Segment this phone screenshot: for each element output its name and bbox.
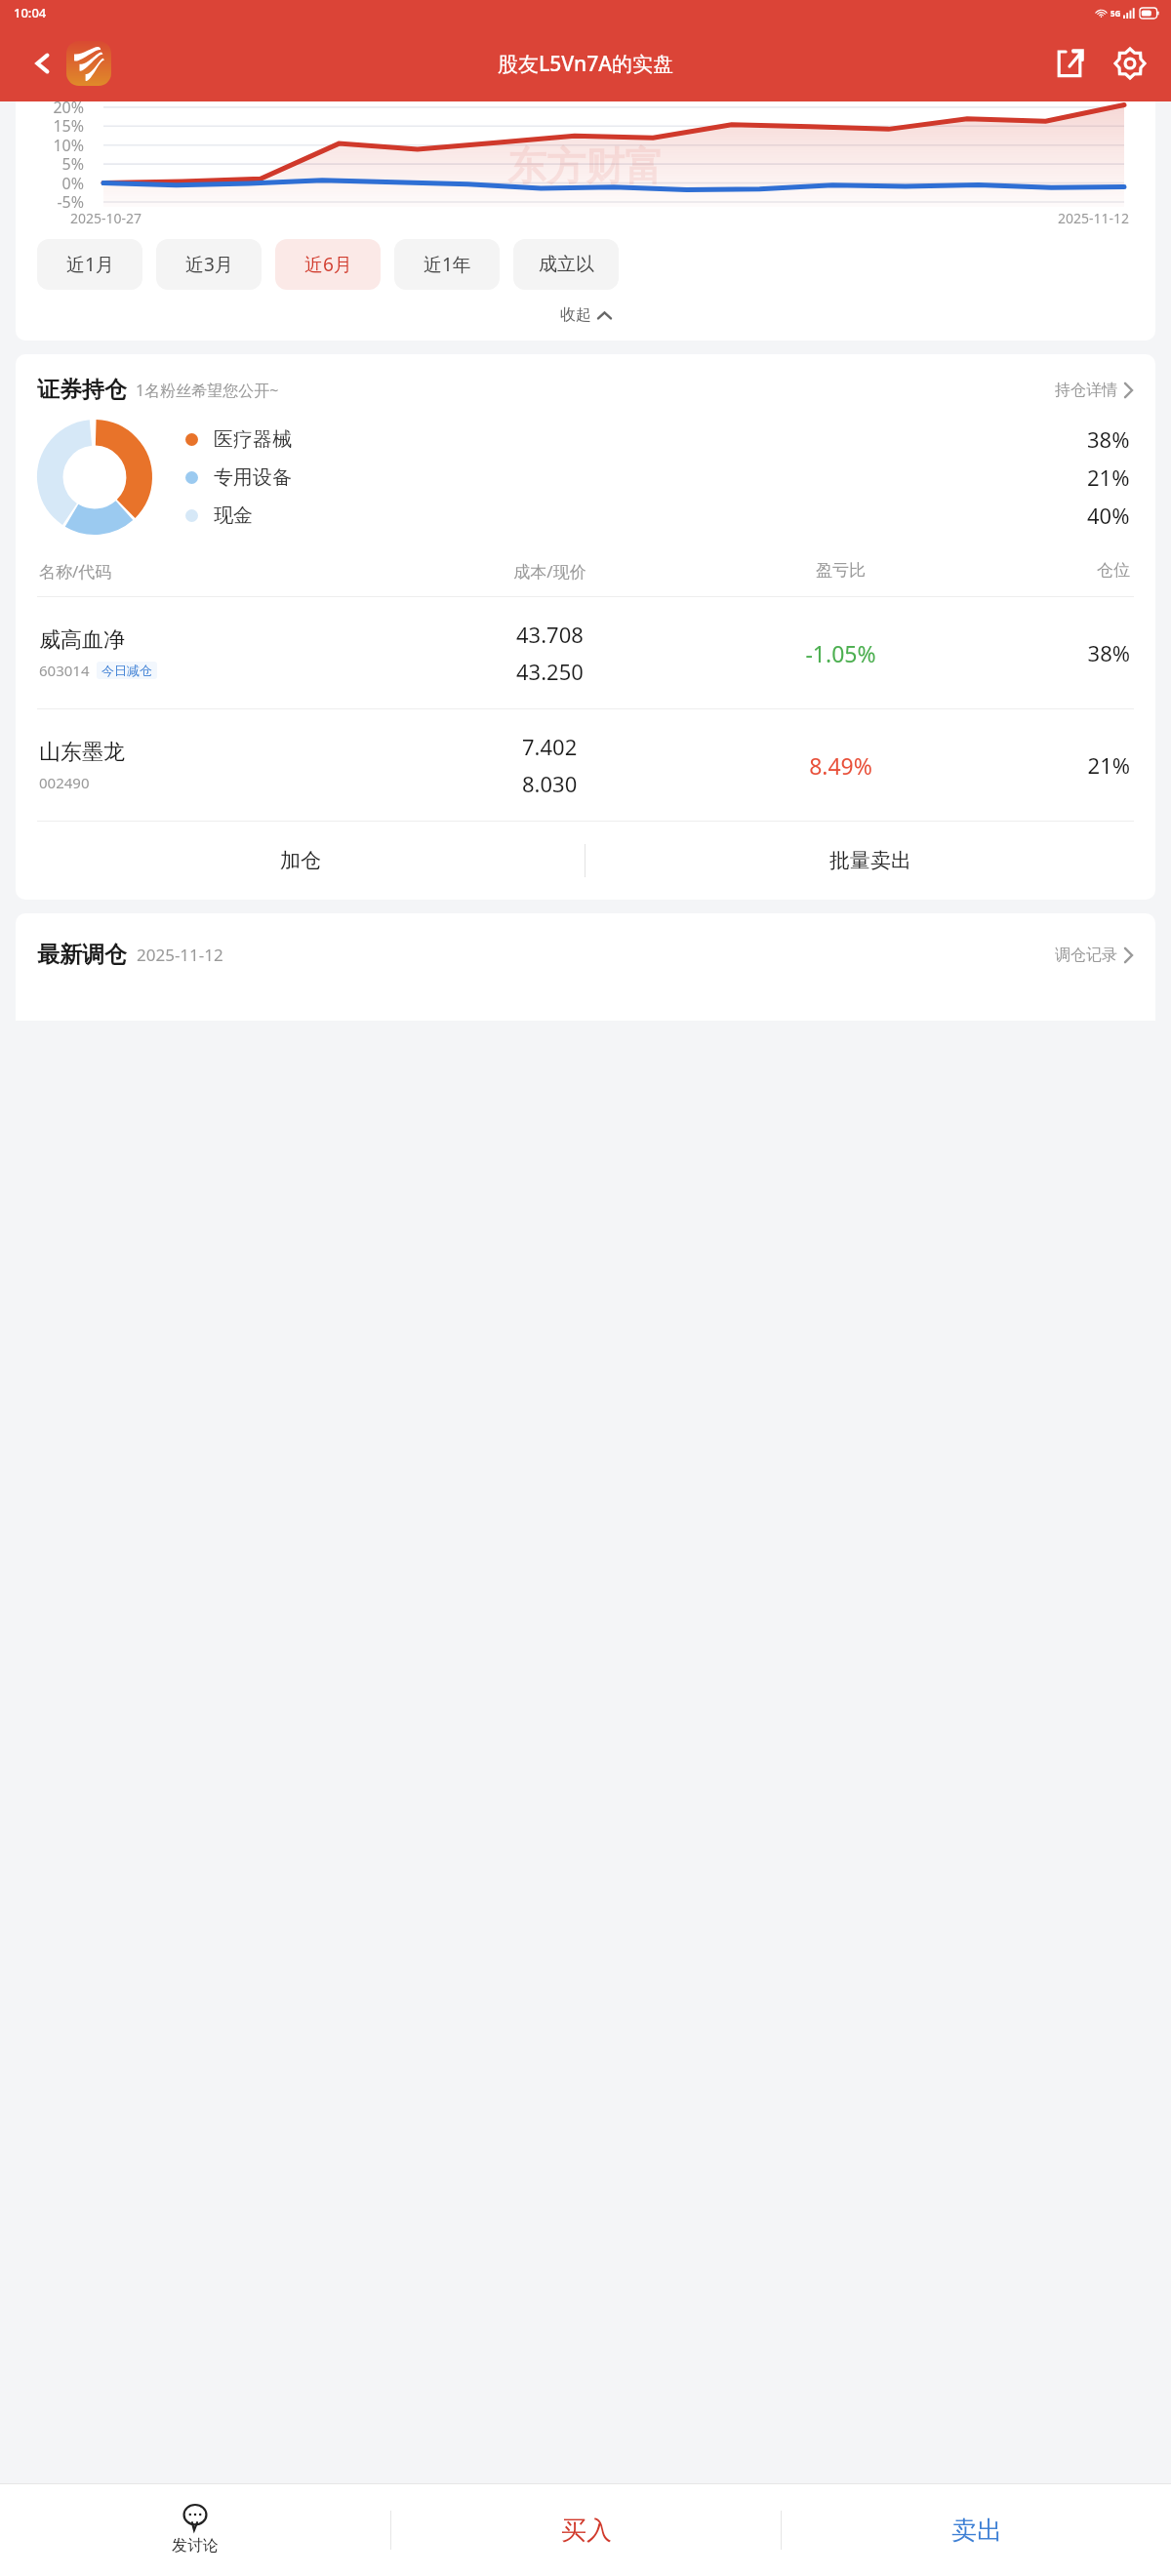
staticText: 43.250 [516, 657, 584, 686]
button[interactable]: 批量卖出 [585, 822, 1155, 900]
staticText: 买入 [561, 2515, 612, 2547]
staticText: 山东墨龙 [39, 739, 125, 766]
staticText: 0% [16, 173, 84, 194]
staticText: 15% [16, 115, 84, 137]
button[interactable]: 成立以 [513, 239, 619, 290]
button[interactable]: 近1月 [37, 239, 142, 290]
staticText: 7.402 [522, 732, 578, 761]
staticText: 名称/代码 [39, 560, 388, 583]
button[interactable]: 近6月 [275, 239, 381, 290]
staticText: 21% [1087, 463, 1130, 492]
staticText: 持仓详情 [1055, 381, 1117, 400]
button[interactable]: 买入 [391, 2484, 781, 2576]
staticText: 近6月 [304, 252, 352, 277]
staticText: 仓位 [970, 560, 1130, 581]
staticText: 调仓记录 [1055, 946, 1117, 965]
staticText: 近1月 [66, 252, 114, 277]
staticText: 卖出 [951, 2515, 1002, 2547]
staticText: 威高血净 [39, 626, 125, 654]
staticText: 证券持仓 [37, 376, 127, 404]
staticText: 38% [970, 638, 1130, 667]
button[interactable]: 近3月 [156, 239, 262, 290]
button[interactable]: 山东墨龙 [16, 709, 1155, 821]
button[interactable]: 持仓详情 [1055, 381, 1134, 400]
button[interactable]: 卖出 [782, 2484, 1171, 2576]
staticText: 1名粉丝希望您公开~ [136, 380, 279, 401]
staticText: 盈亏比 [711, 560, 970, 581]
staticText: 最新调仓 [37, 941, 127, 969]
staticText: 20% [16, 101, 84, 118]
staticText: 成本/现价 [388, 560, 711, 583]
staticText: 加仓 [280, 848, 321, 873]
staticText: 2025-10-27 [70, 209, 142, 227]
staticText: 2025-11-12 [1058, 209, 1130, 227]
staticText: 收起 [560, 305, 591, 325]
staticText: 现金 [214, 503, 253, 528]
button[interactable]: Share [1046, 40, 1093, 87]
staticText: 5G [1110, 8, 1121, 19]
staticText: 批量卖出 [829, 848, 911, 873]
staticText: 603014 [39, 661, 90, 680]
button[interactable]: 调仓记录 [1055, 946, 1134, 965]
staticText: 成立以 [539, 253, 594, 276]
button[interactable]: 收起 [16, 302, 1155, 329]
button[interactable]: 近1年 [394, 239, 500, 290]
button[interactable]: Settings [1107, 40, 1153, 87]
staticText: 40% [1087, 501, 1130, 530]
staticText: 专用设备 [214, 465, 292, 490]
staticText: 今日减仓 [101, 663, 152, 678]
staticText: 5% [16, 153, 84, 175]
button[interactable]: 威高血净 [16, 597, 1155, 708]
staticText: 21% [970, 750, 1130, 780]
staticText: -5% [16, 191, 84, 213]
staticText: 股友L5Vn7A的实盘 [498, 50, 673, 78]
button[interactable]: Back [21, 42, 64, 85]
staticText: 8.49% [711, 750, 970, 781]
staticText: 002490 [39, 773, 90, 792]
staticText: 38% [1087, 424, 1130, 454]
staticText: 8.030 [522, 769, 578, 798]
staticText: 医疗器械 [214, 427, 292, 452]
staticText: 近1年 [424, 252, 471, 277]
button[interactable]: 发讨论 [0, 2484, 390, 2576]
staticText: 43.708 [516, 620, 584, 649]
staticText: 近3月 [185, 252, 233, 277]
staticText: -1.05% [711, 638, 970, 668]
button[interactable]: 加仓 [16, 822, 585, 900]
staticText: 10:04 [14, 4, 47, 21]
staticText: 发讨论 [172, 2536, 219, 2556]
staticText: 2025-11-12 [137, 944, 223, 966]
staticText: 东方财富 [507, 141, 664, 190]
button[interactable] [66, 41, 111, 86]
staticText: 10% [16, 135, 84, 156]
